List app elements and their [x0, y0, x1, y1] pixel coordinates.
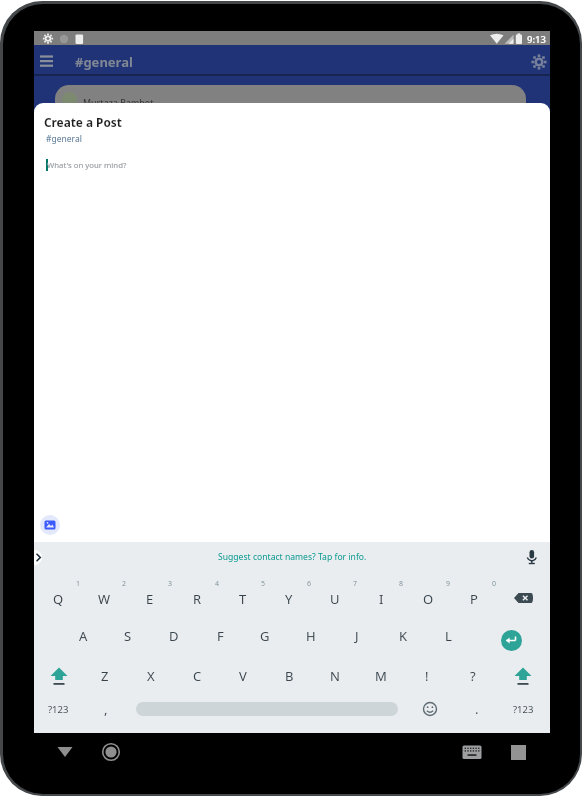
staticText: 7 — [353, 579, 358, 589]
button[interactable]: , — [96, 698, 116, 720]
button[interactable]: ? — [453, 665, 493, 687]
staticText: 6 — [307, 579, 312, 589]
button[interactable]: Suggest contact names? Tap for info. — [34, 542, 550, 572]
staticText: H — [306, 627, 316, 645]
button[interactable] — [47, 666, 71, 688]
button[interactable]: J — [337, 625, 377, 647]
button[interactable] — [461, 743, 483, 761]
button[interactable]: C — [177, 665, 217, 687]
button[interactable] — [501, 630, 522, 651]
staticText: Suggest contact names? Tap for info. — [218, 551, 367, 563]
staticText: ? — [470, 667, 476, 685]
staticText: D — [169, 627, 179, 645]
staticText: U — [330, 590, 340, 608]
button[interactable] — [421, 700, 439, 718]
staticText: 5 — [261, 579, 266, 589]
button[interactable]: Z — [85, 665, 125, 687]
button[interactable]: U — [315, 588, 355, 610]
staticText: 0 — [492, 579, 497, 589]
button[interactable]: D — [154, 625, 194, 647]
button[interactable]: E — [130, 588, 170, 610]
staticText: Create a Post — [44, 114, 122, 130]
button[interactable]: M — [361, 665, 401, 687]
button[interactable]: G — [245, 625, 285, 647]
staticText: . — [475, 700, 479, 718]
staticText: 9 — [446, 579, 451, 589]
button[interactable]: P — [454, 588, 494, 610]
button[interactable]: F — [200, 625, 240, 647]
staticText: E — [146, 590, 154, 608]
staticText: Murtaza Bambot — [83, 97, 154, 103]
staticText: 4 — [215, 579, 220, 589]
staticText: N — [330, 667, 340, 685]
button[interactable] — [40, 515, 60, 535]
button[interactable]: V — [223, 665, 263, 687]
button[interactable]: W — [84, 588, 124, 610]
button[interactable]: . — [467, 698, 487, 720]
staticText: J — [355, 627, 359, 645]
button[interactable]: B — [269, 665, 309, 687]
button[interactable] — [99, 740, 123, 764]
staticText: ?123 — [48, 703, 69, 716]
button[interactable]: H — [291, 625, 331, 647]
staticText: P — [470, 590, 478, 608]
button[interactable]: Y — [269, 588, 309, 610]
button[interactable]: ?123 — [40, 698, 76, 720]
button[interactable]: N — [315, 665, 355, 687]
staticText: ! — [425, 667, 429, 685]
button[interactable]: A — [63, 625, 103, 647]
button[interactable] — [53, 742, 77, 762]
button[interactable]: ?123 — [505, 698, 541, 720]
button[interactable]: S — [108, 625, 148, 647]
button[interactable]: Q — [38, 588, 78, 610]
staticText: 2 — [122, 579, 127, 589]
staticText: G — [260, 627, 270, 645]
staticText: T — [239, 590, 247, 608]
button[interactable] — [530, 53, 548, 71]
staticText: W — [98, 590, 111, 608]
button[interactable]: R — [177, 588, 217, 610]
staticText: , — [104, 700, 108, 718]
button[interactable] — [37, 52, 56, 70]
staticText: F — [217, 627, 224, 645]
button[interactable]: T — [223, 588, 263, 610]
staticText: A — [79, 627, 88, 645]
staticText: X — [147, 667, 155, 685]
button[interactable]: K — [383, 625, 423, 647]
staticText: What's on your mind? — [47, 160, 127, 171]
button[interactable]: O — [408, 588, 448, 610]
staticText: Q — [53, 590, 64, 608]
button[interactable]: X — [131, 665, 171, 687]
staticText: 9:13 — [527, 33, 546, 46]
staticText: R — [193, 590, 202, 608]
staticText: B — [285, 667, 294, 685]
staticText: S — [124, 627, 132, 645]
staticText: 3 — [168, 579, 173, 589]
staticText: L — [445, 627, 452, 645]
staticText: M — [375, 667, 387, 685]
staticText: 1 — [76, 579, 81, 589]
staticText: O — [423, 590, 434, 608]
staticText: #general — [75, 53, 133, 71]
staticText: Y — [285, 590, 293, 608]
staticText: V — [239, 667, 247, 685]
button[interactable]: ! — [407, 665, 447, 687]
staticText: ?123 — [513, 703, 534, 716]
staticText: C — [193, 667, 202, 685]
staticText: I — [379, 590, 384, 608]
staticText: Z — [101, 667, 109, 685]
button[interactable]: I — [361, 588, 401, 610]
button[interactable] — [511, 666, 535, 688]
staticText: #general — [46, 133, 82, 145]
staticText: K — [399, 627, 408, 645]
staticText: 8 — [399, 579, 404, 589]
button[interactable] — [512, 588, 538, 609]
button[interactable]: L — [428, 625, 468, 647]
